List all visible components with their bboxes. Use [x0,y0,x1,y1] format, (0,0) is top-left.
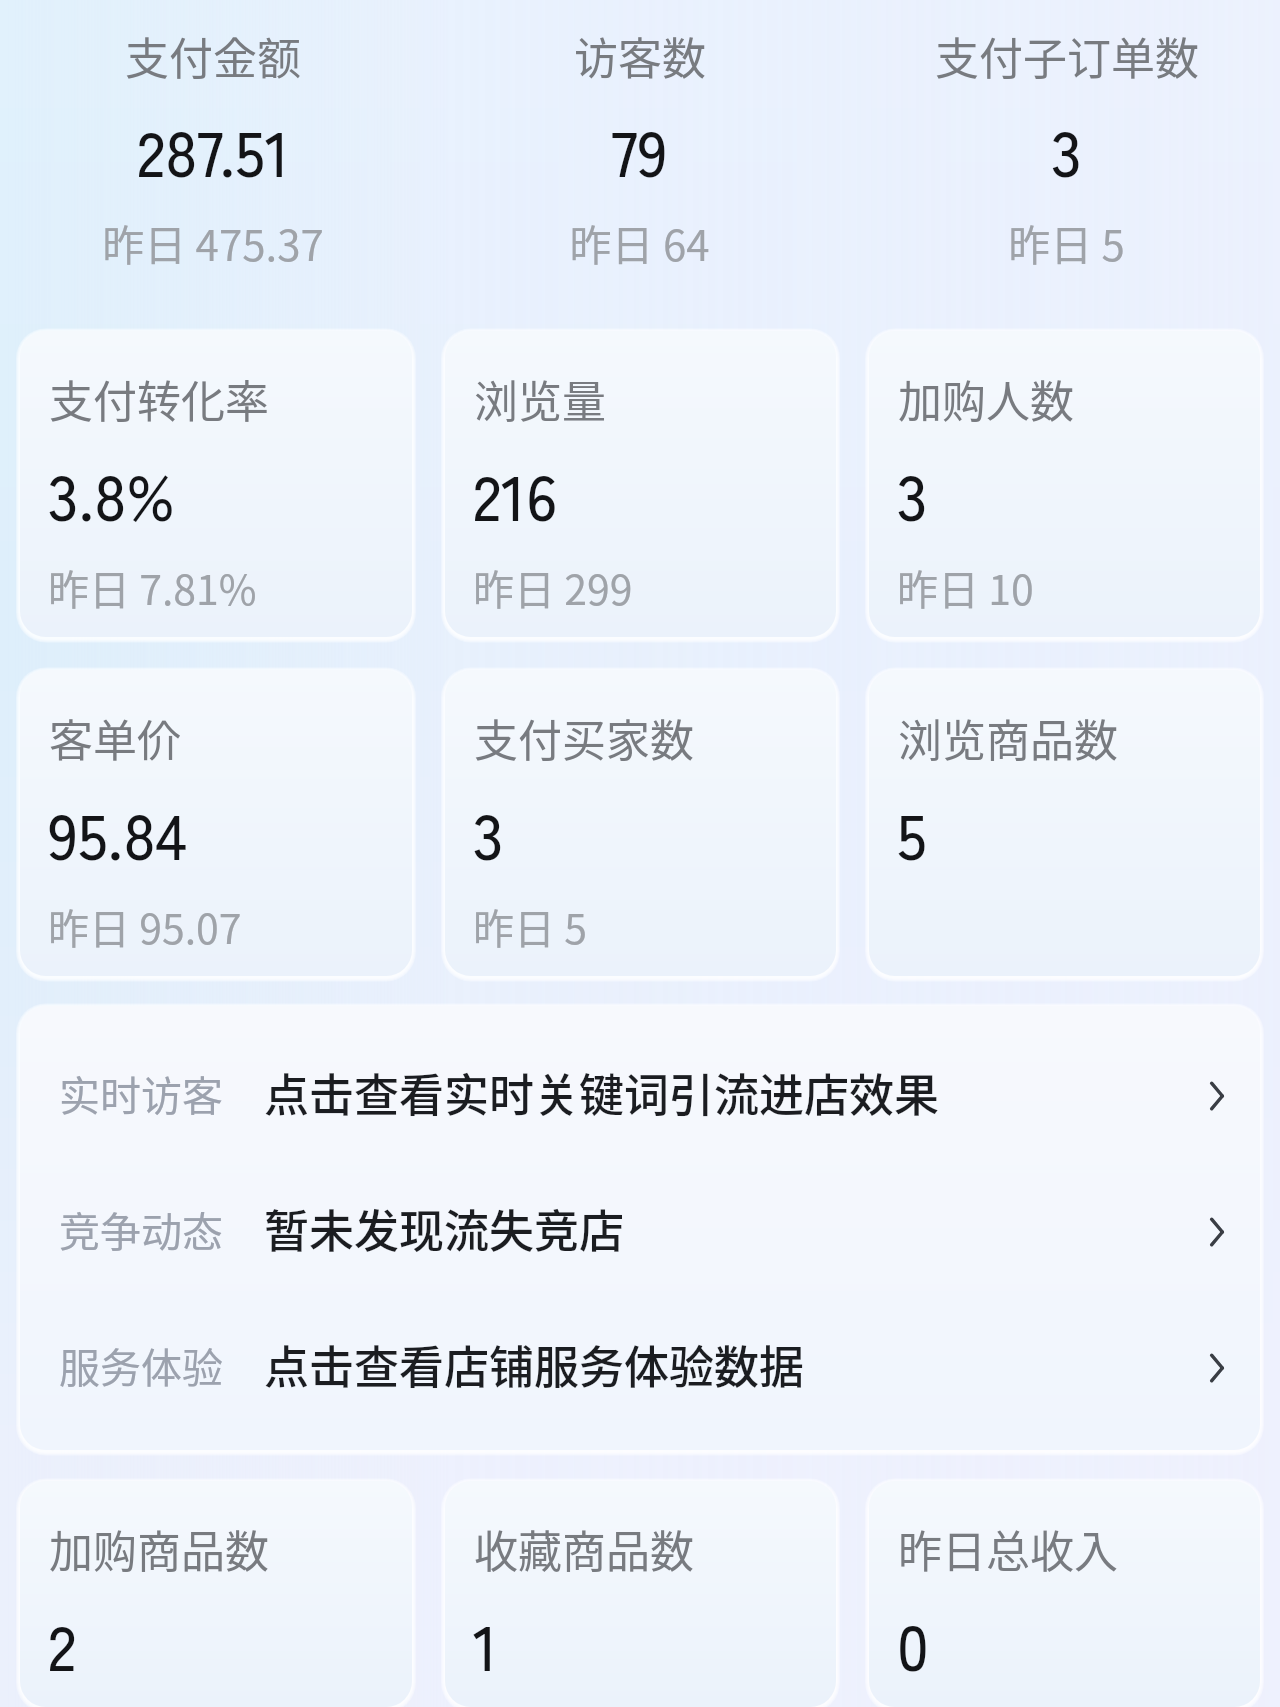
staticText: 0 [897,1598,929,1689]
button[interactable]: 支付子订单数 [853,0,1280,331]
staticText: 支付金额 [125,24,301,88]
staticText: 3.8% [48,448,175,539]
staticText: 3 [473,787,504,878]
staticText: 点击查看店铺服务体验数据 [264,1332,805,1397]
staticText: 昨日 10 [897,557,1034,616]
button[interactable]: 收藏商品数 [445,1481,836,1707]
staticText: 访客数 [574,24,706,88]
staticText: 实时访客 [59,1063,223,1122]
staticText: 95.84 [48,787,187,878]
staticText: 浏览商品数 [898,706,1118,770]
staticText: 支付买家数 [474,706,694,770]
staticText: 客单价 [49,706,181,770]
staticText: 竞争动态 [59,1199,223,1258]
other: Open 竞争动态 [1189,1200,1245,1256]
staticText: 3 [897,448,928,539]
staticText: 支付子订单数 [935,24,1199,88]
staticText: 暂未发现流失竞店 [264,1196,625,1261]
button[interactable]: 昨日总收入 [869,1481,1260,1707]
other: Open 实时访客 [1189,1064,1245,1120]
staticText: 昨日 475.37 [102,212,324,273]
button[interactable]: 加购商品数 [20,1481,412,1707]
staticText: 2 [48,1598,77,1689]
staticText: 收藏商品数 [474,1517,694,1581]
staticText: 79 [611,104,668,195]
button[interactable]: 浏览商品数 [869,670,1260,976]
staticText: 昨日总收入 [898,1517,1118,1581]
staticText: 昨日 95.07 [48,896,242,955]
staticText: 浏览量 [474,367,606,431]
button[interactable]: 浏览量 [445,331,836,637]
staticText: 1 [473,1598,499,1689]
staticText: 服务体验 [59,1335,223,1394]
button[interactable]: 实时访客 [20,1024,1260,1160]
button[interactable]: 加购人数 [869,331,1260,637]
button[interactable]: 支付买家数 [445,670,836,976]
staticText: 加购人数 [898,367,1074,431]
staticText: 216 [473,448,558,539]
button[interactable]: 支付金额 [0,0,426,331]
button[interactable]: 客单价 [20,670,412,976]
staticText: 昨日 7.81% [48,557,257,616]
button[interactable]: 支付转化率 [20,331,412,637]
staticText: 昨日 5 [1008,212,1125,273]
staticText: 287.51 [137,104,290,195]
staticText: 支付转化率 [49,367,269,431]
button[interactable]: 竞争动态 [20,1160,1260,1296]
staticText: 加购商品数 [49,1517,269,1581]
staticText: 3 [1051,104,1082,195]
staticText: 点击查看实时关键词引流进店效果 [264,1060,940,1125]
staticText: 昨日 64 [569,212,710,273]
other: Open 服务体验 [1189,1336,1245,1392]
button[interactable]: 服务体验 [20,1296,1260,1432]
staticText: 昨日 5 [473,896,587,955]
button[interactable]: 访客数 [426,0,853,331]
staticText: 5 [897,787,927,878]
staticText: 昨日 299 [473,557,633,616]
